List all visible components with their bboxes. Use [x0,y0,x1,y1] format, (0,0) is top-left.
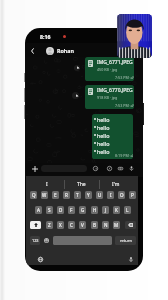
button[interactable]: Camera [117,165,123,171]
staticText: F [70,207,73,213]
button[interactable]: Stickers [92,165,98,171]
staticText: Z [48,222,51,228]
staticText: M [114,222,119,228]
button[interactable]: D [57,206,64,214]
button[interactable]: Backspace [125,221,136,229]
staticText: Y [87,192,90,198]
staticText: E [54,192,57,198]
button[interactable]: T [74,191,81,199]
button[interactable]: I'm [107,180,125,188]
button[interactable]: N [102,221,109,229]
staticText: 7:53 PM [115,103,129,108]
button[interactable]: Z [46,221,53,229]
button[interactable]: hello [92,114,133,159]
button[interactable]: Y [85,191,92,199]
button[interactable]: P [129,191,136,199]
button[interactable]: Forward [74,65,80,71]
staticText: I'm [112,181,120,188]
staticText: IMG_6770.JPEG [97,87,133,94]
button[interactable]: Attach file [106,165,112,171]
button[interactable]: X [57,221,64,229]
button[interactable]: G [79,206,86,214]
staticText: X [59,222,62,228]
staticText: hello [97,132,110,139]
staticText: C [70,222,73,228]
staticText: T [76,192,79,198]
staticText: hello [97,148,110,155]
button[interactable]: Rohan [57,47,74,54]
staticText: O [120,192,124,198]
button[interactable]: The [72,180,90,188]
staticText: 918 KB · jpg [97,95,118,100]
button[interactable]: F [68,206,75,214]
staticText: H [93,207,97,213]
button[interactable]: Shift [30,221,41,229]
staticText: D [59,207,63,213]
staticText: S [48,207,51,213]
button[interactable]: H [91,206,98,214]
button[interactable]: Dictate [128,256,134,262]
staticText: K [115,207,118,213]
button[interactable]: I [38,180,56,188]
staticText: hello [97,140,110,147]
staticText: The [77,181,86,188]
staticText: IMG_6771.JPEG [97,59,133,66]
staticText: G [81,207,85,213]
button[interactable]: J [102,206,109,214]
staticText: V [81,222,84,228]
button[interactable]: M [113,221,120,229]
button[interactable]: return [115,236,136,245]
staticText: R [65,192,68,198]
staticText: I [110,192,112,198]
staticText: B [93,222,96,228]
button[interactable]: Q [30,191,37,199]
button[interactable]: 123 [30,236,40,245]
staticText: hello [97,116,110,123]
button[interactable]: R [63,191,70,199]
button[interactable]: I [107,191,114,199]
staticText: W [42,192,47,198]
staticText: Q [32,192,36,198]
staticText: 8:19 PM [115,153,129,158]
staticText: 7:53 PM [115,75,129,80]
staticText: U [98,192,102,198]
staticText: N [104,222,108,228]
button[interactable]: Attach [31,165,38,172]
staticText: 123 [32,238,39,243]
button[interactable]: Video call [117,14,152,58]
button[interactable]: Emoji [42,236,51,245]
button[interactable]: A [35,206,42,214]
button[interactable]: Change keyboard [37,256,43,262]
staticText: return [120,238,132,243]
button[interactable]: IMG_6770.JPEG [85,85,134,109]
staticText: J [105,207,107,213]
button[interactable]: IMG_6771.JPEG [85,57,134,81]
button[interactable]: O [118,191,125,199]
staticText: 8:16 [40,33,51,40]
staticText: hello [97,124,110,131]
button[interactable]: Voice message [128,165,134,171]
staticText: 450 KB · jpg [97,67,118,72]
staticText: P [131,192,134,198]
button[interactable]: W [41,191,48,199]
button[interactable]: L [124,206,131,214]
button[interactable]: Forward [72,92,79,99]
button[interactable]: Back [29,46,36,55]
button[interactable]: K [113,206,120,214]
button[interactable]: B [91,221,98,229]
button[interactable]: C [68,221,75,229]
staticText: I [46,181,48,188]
button[interactable]: Contact photo [46,47,54,55]
button[interactable]: U [96,191,103,199]
button[interactable]: E [52,191,59,199]
staticText: L [126,207,129,213]
staticText: A [37,207,40,213]
button[interactable]: V [79,221,86,229]
button[interactable]: S [46,206,53,214]
